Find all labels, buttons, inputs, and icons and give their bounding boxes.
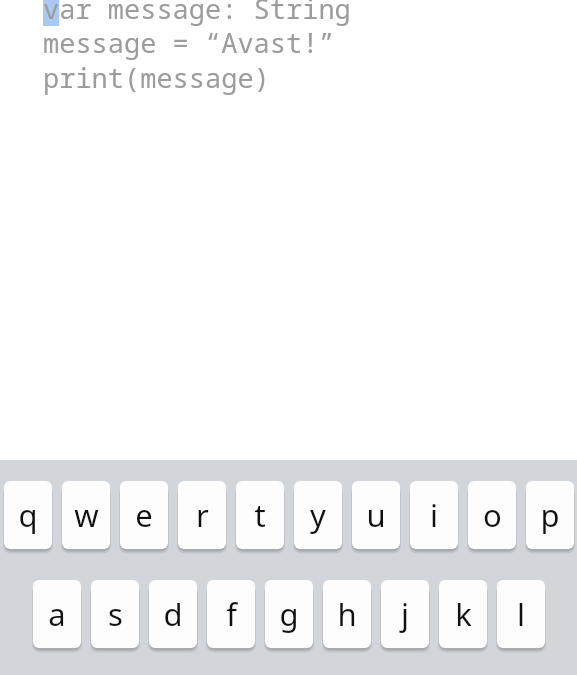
staticText: g [279,593,299,635]
button[interactable]: w [62,481,110,549]
staticText: j [401,593,409,635]
button[interactable]: h [323,580,371,648]
button[interactable]: g [265,580,313,648]
staticText: l [517,593,525,635]
staticText: p [540,494,560,536]
staticText: a [48,593,66,635]
staticText: i [430,494,438,536]
staticText: k [455,593,472,635]
button[interactable]: j [381,580,429,648]
staticText: w [74,494,99,536]
staticText: q [18,494,38,536]
staticText: f [226,593,237,635]
staticText: h [337,593,357,635]
button[interactable]: i [410,481,458,549]
button[interactable]: r [178,481,226,549]
button[interactable]: e [120,481,168,549]
button[interactable]: s [91,580,139,648]
staticText: e [135,494,153,536]
staticText: var message: String message = “Avast!” p… [43,0,351,96]
staticText: u [366,494,386,536]
button[interactable]: o [468,481,516,549]
staticText: d [163,593,183,635]
button[interactable]: k [439,580,487,648]
button[interactable]: p [526,481,574,549]
button[interactable]: l [497,580,545,648]
staticText: s [108,593,123,635]
button[interactable]: u [352,481,400,549]
button[interactable]: f [207,580,255,648]
button[interactable]: q [4,481,52,549]
button[interactable]: a [33,580,81,648]
button[interactable]: t [236,481,284,549]
staticText: y [310,494,326,536]
staticText: r [196,494,209,536]
button[interactable]: var message: String message = “Avast!” p… [0,0,577,460]
staticText: o [483,494,502,536]
button[interactable]: y [294,481,342,549]
staticText: t [254,494,266,536]
button[interactable]: d [149,580,197,648]
